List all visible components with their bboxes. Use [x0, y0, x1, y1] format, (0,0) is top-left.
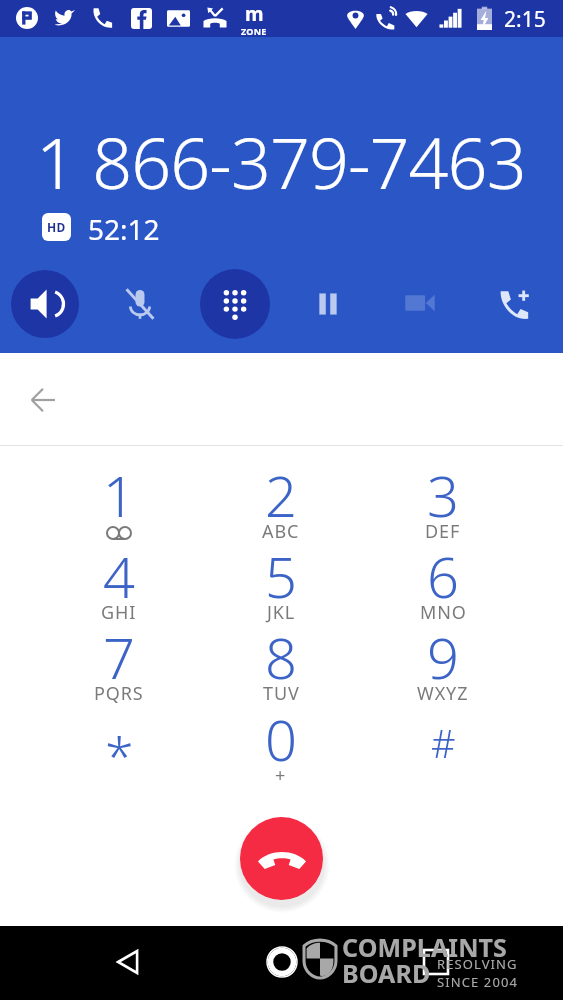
- staticText: 3: [427, 457, 459, 533]
- staticText: 2: [265, 457, 297, 533]
- button[interactable]: 0: [206, 701, 356, 782]
- button[interactable]: Mute: [106, 270, 174, 338]
- staticText: 52:12: [88, 210, 160, 248]
- button[interactable]: 5: [206, 538, 356, 619]
- staticText: GHI: [101, 600, 137, 625]
- button[interactable]: Hold: [294, 270, 362, 338]
- staticText: 1: [103, 457, 135, 533]
- button[interactable]: End call: [240, 817, 323, 900]
- button[interactable]: Back: [22, 379, 64, 421]
- staticText: 4: [103, 538, 135, 614]
- staticText: TUV: [263, 681, 300, 706]
- button[interactable]: 9: [368, 619, 518, 700]
- staticText: 5: [265, 538, 297, 614]
- button[interactable]: Video call: [386, 269, 454, 337]
- staticText: DEF: [425, 519, 461, 544]
- button[interactable]: *: [44, 701, 194, 782]
- button[interactable]: Add call: [482, 270, 550, 338]
- staticText: 8: [265, 619, 297, 695]
- staticText: 0: [265, 701, 297, 777]
- button[interactable]: Dialpad: [200, 269, 270, 339]
- staticText: MNO: [420, 600, 467, 625]
- staticText: WXYZ: [417, 681, 469, 706]
- button[interactable]: 4: [44, 538, 194, 619]
- staticText: m: [245, 1, 264, 27]
- staticText: BOARD: [342, 956, 431, 990]
- button[interactable]: Home: [266, 946, 298, 978]
- staticText: ZONE: [241, 25, 267, 36]
- staticText: RESOLVING: [437, 955, 518, 973]
- button[interactable]: 6: [368, 538, 518, 619]
- staticText: ABC: [262, 519, 300, 544]
- staticText: SINCE 2004: [437, 973, 518, 991]
- button[interactable]: 1: [44, 457, 194, 538]
- staticText: +: [275, 763, 287, 788]
- button[interactable]: 2: [206, 457, 356, 538]
- button[interactable]: #: [368, 701, 518, 782]
- staticText: #: [431, 717, 456, 769]
- button[interactable]: 3: [368, 457, 518, 538]
- staticText: COMPLAINTS: [342, 930, 507, 964]
- staticText: *: [105, 719, 134, 790]
- staticText: 6: [427, 538, 459, 614]
- button[interactable]: Speaker: [11, 270, 79, 338]
- staticText: 7: [103, 619, 135, 695]
- staticText: 1 866-379-7463: [36, 114, 526, 209]
- staticText: 9: [427, 619, 459, 695]
- button[interactable]: 7: [44, 619, 194, 700]
- button[interactable]: Recents: [424, 950, 448, 974]
- staticText: 2:15: [504, 5, 546, 34]
- staticText: HD: [47, 219, 66, 235]
- staticText: JKL: [267, 600, 296, 625]
- button[interactable]: Back: [107, 941, 149, 983]
- staticText: PQRS: [94, 681, 144, 706]
- button[interactable]: 8: [206, 619, 356, 700]
